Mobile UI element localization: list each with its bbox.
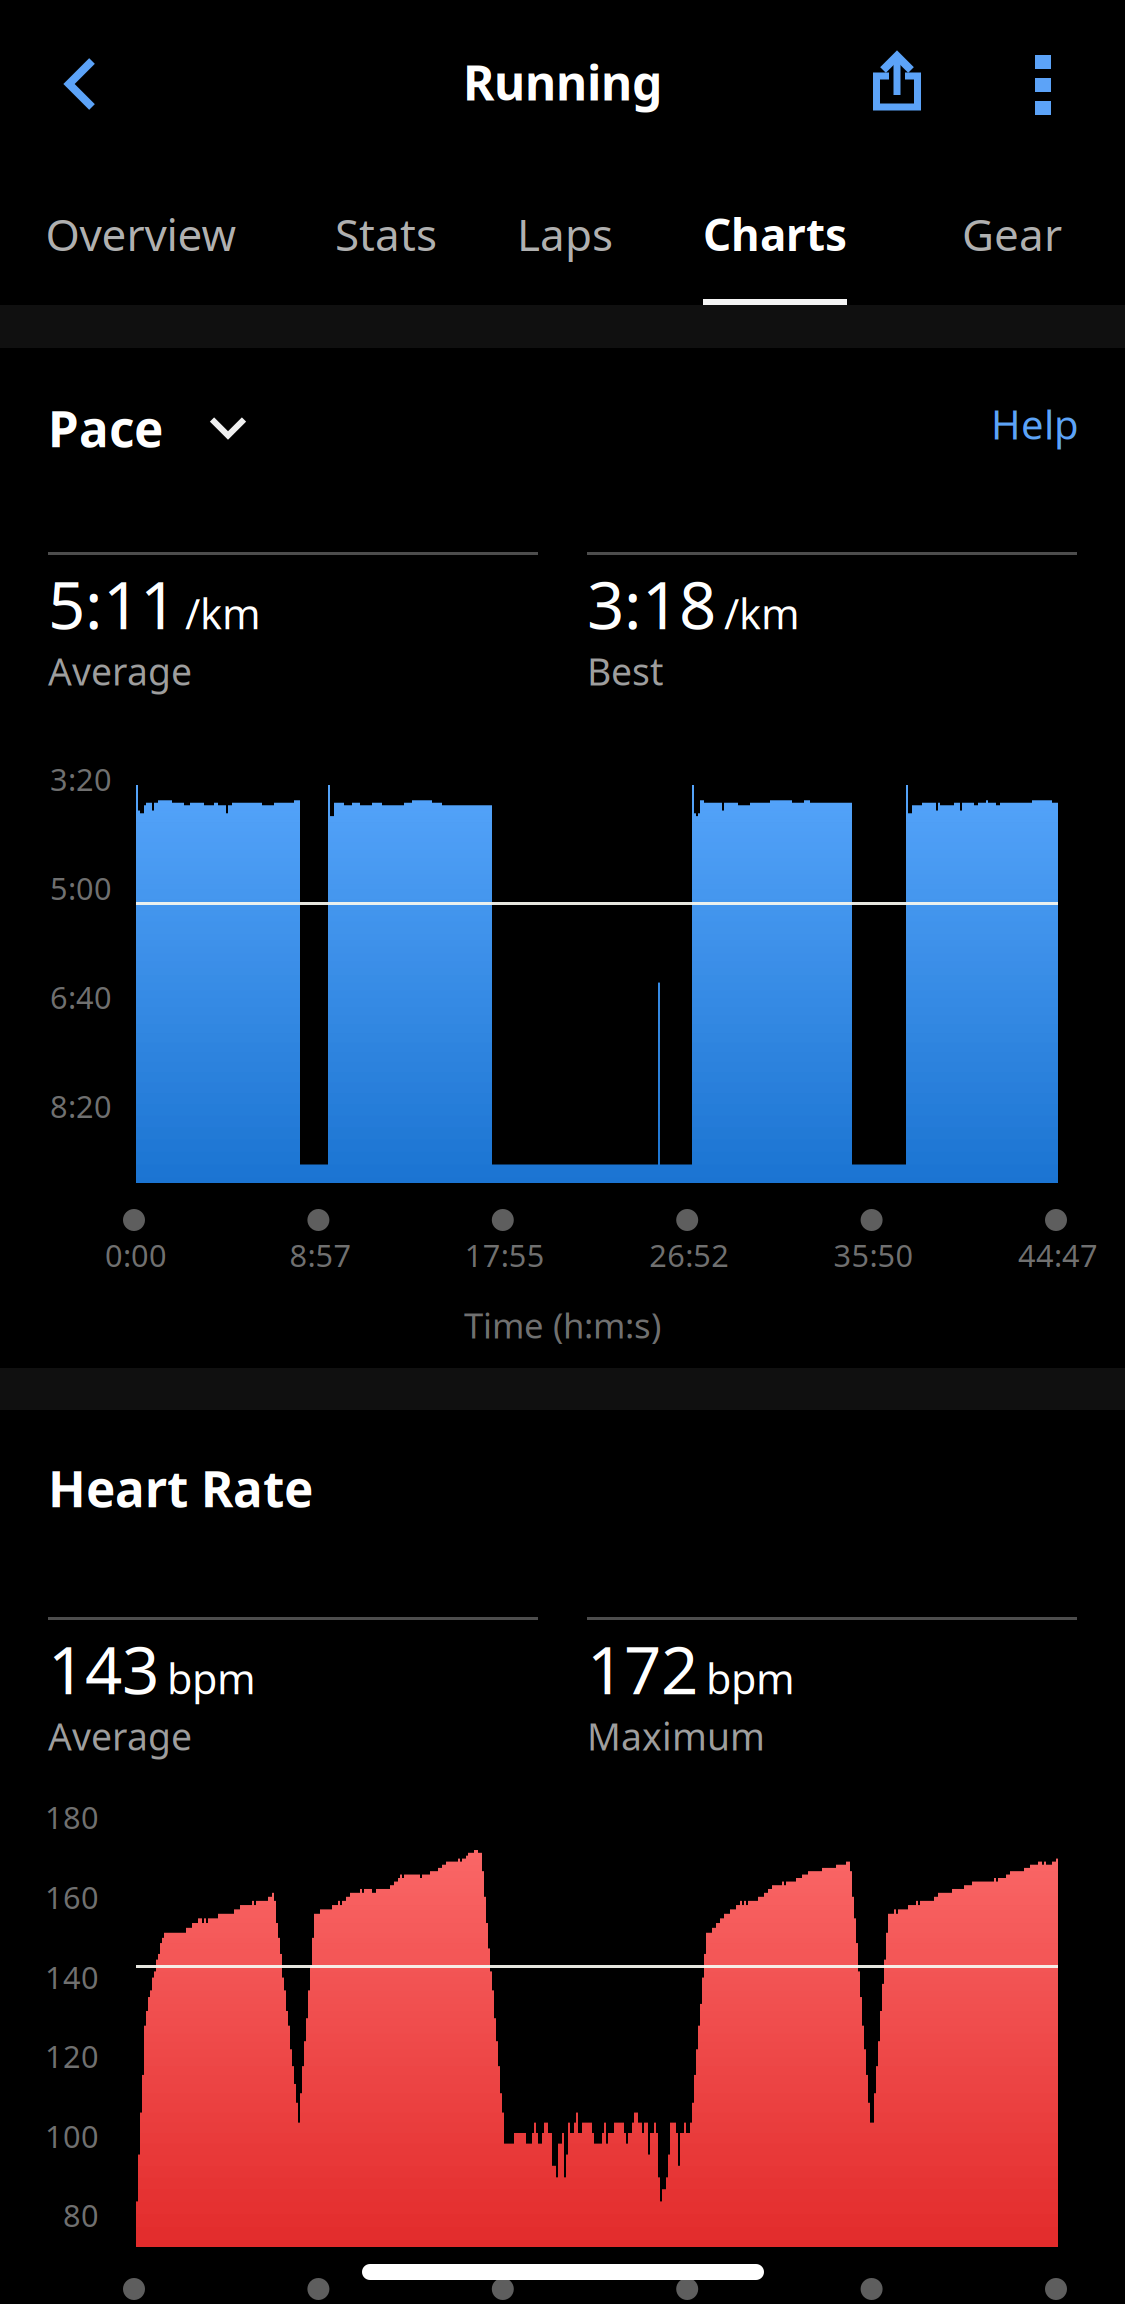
staticText: Laps: [517, 205, 613, 263]
staticText: 8:57: [289, 1235, 351, 1275]
staticText: 100: [45, 2116, 99, 2156]
staticText: 5:00: [50, 868, 112, 908]
button[interactable]: Pace: [30, 385, 330, 471]
staticText: Charts: [703, 205, 847, 263]
staticText: 143: [48, 1626, 159, 1712]
staticText: 120: [45, 2036, 99, 2076]
staticText: /km: [185, 586, 261, 641]
button[interactable]: Overview: [0, 168, 282, 306]
staticText: 17:55: [465, 1235, 545, 1275]
staticText: Help: [991, 397, 1079, 450]
staticText: Overview: [45, 205, 236, 263]
staticText: Heart Rate: [48, 1455, 313, 1521]
button[interactable]: Gear: [903, 168, 1121, 306]
staticText: Stats: [335, 205, 437, 263]
staticText: 0:00: [105, 1235, 167, 1275]
staticText: 26:52: [649, 1235, 729, 1275]
staticText: 3:20: [50, 759, 112, 799]
staticText: Time (h:m:s): [464, 1302, 661, 1348]
staticText: 180: [45, 1797, 99, 1837]
staticText: 5:11: [48, 561, 177, 647]
staticText: /km: [724, 586, 800, 641]
staticText: 35:50: [834, 1235, 914, 1275]
staticText: 140: [45, 1957, 99, 1997]
button[interactable]: Laps: [474, 168, 656, 306]
button[interactable]: Charts: [668, 168, 882, 306]
button[interactable]: Stats: [284, 168, 488, 306]
staticText: 44:47: [1018, 1235, 1098, 1275]
button[interactable]: Back: [20, 32, 124, 136]
staticText: Maximum: [587, 1711, 765, 1761]
staticText: Best: [587, 646, 663, 696]
staticText: 6:40: [50, 977, 112, 1017]
staticText: 80: [63, 2195, 99, 2235]
staticText: 3:18: [587, 561, 716, 647]
staticText: bpm: [706, 1651, 795, 1706]
staticText: Gear: [962, 205, 1062, 263]
staticText: Average: [48, 646, 192, 696]
staticText: bpm: [167, 1651, 256, 1706]
staticText: 172: [587, 1626, 698, 1712]
staticText: Pace: [48, 395, 163, 461]
staticText: 160: [45, 1877, 99, 1917]
button[interactable]: More options: [990, 30, 1094, 134]
staticText: Average: [48, 1711, 192, 1761]
button[interactable]: Help: [955, 381, 1097, 467]
button[interactable]: Share: [845, 30, 949, 134]
staticText: Running: [463, 50, 662, 114]
staticText: 8:20: [50, 1086, 112, 1126]
